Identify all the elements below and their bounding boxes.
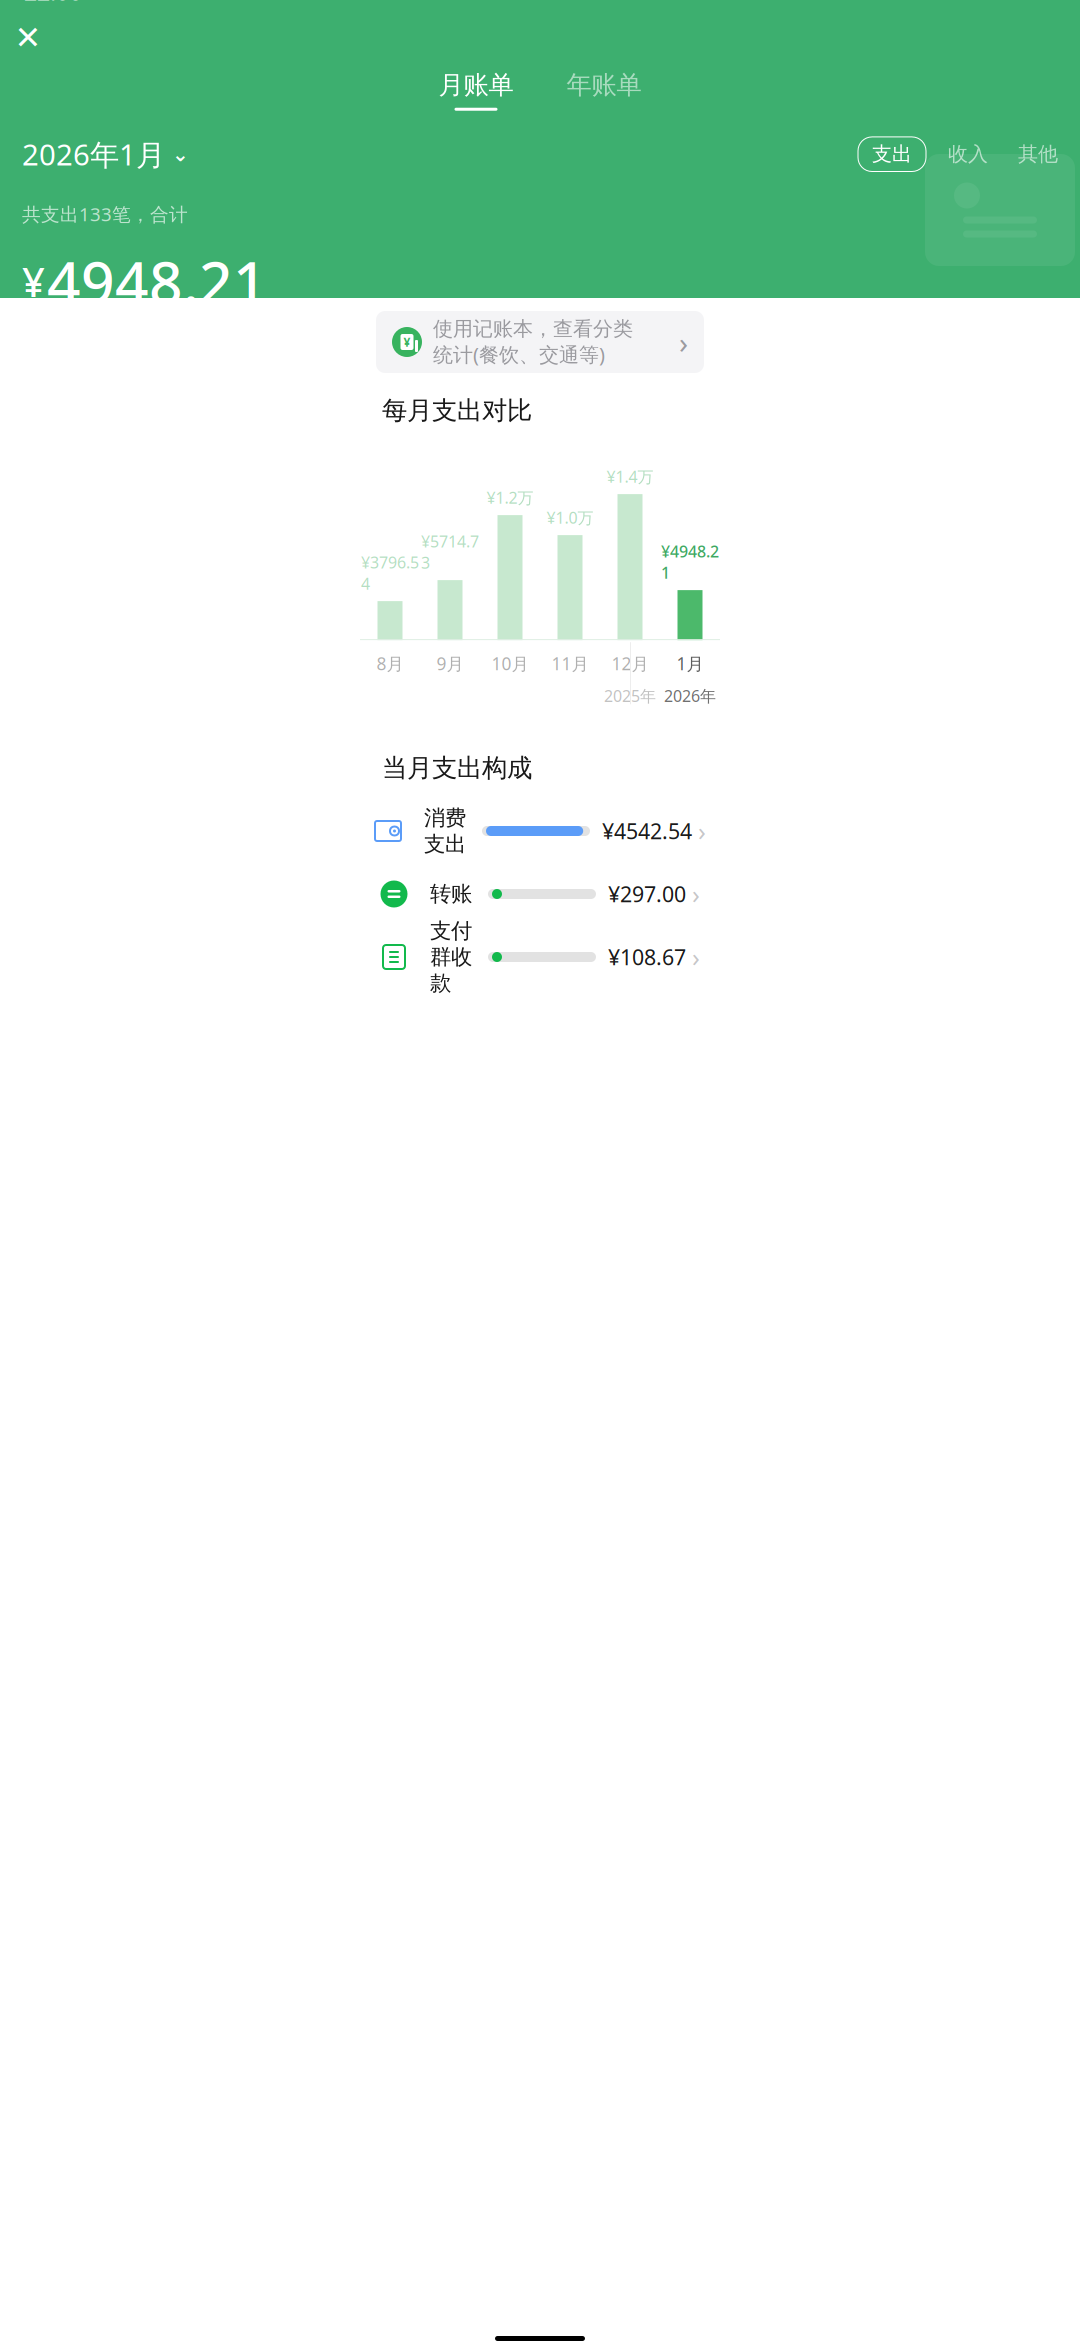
staticText: 消费支出 <box>424 805 466 857</box>
staticText: ¥4542.54 <box>602 817 692 845</box>
staticText: 10月 <box>491 652 528 675</box>
button[interactable]: 2026年1月 <box>22 135 189 174</box>
staticText: 共支出133笔，合计 <box>22 202 188 226</box>
staticText: › <box>698 814 706 848</box>
button[interactable]: ¥ <box>376 311 704 373</box>
staticText: 9月 <box>436 652 463 675</box>
staticText: 2026年 <box>664 685 716 706</box>
staticText: › <box>692 877 700 911</box>
staticText: 每月支出对比 <box>382 395 532 426</box>
button[interactable]: 支出 <box>858 137 926 171</box>
staticText: ¥3796.54 <box>361 552 419 594</box>
staticText: 收入 <box>948 142 988 166</box>
staticText: 22:00 <box>24 0 82 7</box>
staticText: ¥1.0万 <box>546 507 593 528</box>
staticText: 12月 <box>611 652 648 675</box>
staticText: 转账 <box>430 881 472 907</box>
staticText: ¥ <box>403 334 410 350</box>
staticText: 8月 <box>376 652 403 675</box>
staticText: 支出 <box>872 142 912 166</box>
staticText: 2026年1月 <box>22 135 165 174</box>
staticText: ¥1.4万 <box>606 466 653 487</box>
staticText: 月账单 <box>438 70 513 101</box>
staticText: ⌄ <box>172 143 189 166</box>
staticText: › <box>692 940 700 974</box>
button[interactable]: 其他 <box>1018 142 1058 166</box>
button[interactable]: 收入 <box>948 142 988 166</box>
staticText: ✕ <box>14 19 41 56</box>
staticText: ¥1.2万 <box>486 487 533 508</box>
staticText: 11月 <box>551 652 588 675</box>
staticText: 4948.21 <box>47 242 267 320</box>
button[interactable]: Close <box>8 18 48 58</box>
staticText: ¥ <box>22 255 45 308</box>
staticText: 支付群收款 <box>430 918 472 996</box>
staticText: 使用记账本，查看分类统计(餐饮、交通等) <box>433 316 633 367</box>
staticText: ¥4948.21 <box>661 541 719 583</box>
staticText: 1月 <box>676 652 703 675</box>
button[interactable]: 转账 <box>358 862 722 925</box>
staticText: ¥5714.73 <box>421 531 479 573</box>
staticText: ¥108.67 <box>608 943 686 971</box>
button[interactable]: 月账单 <box>426 70 526 111</box>
staticText: 当月支出构成 <box>382 752 532 783</box>
button[interactable]: 年账单 <box>554 70 654 111</box>
staticText: 2025年 <box>604 685 656 706</box>
staticText: › <box>679 322 688 361</box>
staticText: 其他 <box>1018 142 1058 166</box>
button[interactable]: 支付群收款 <box>358 925 722 988</box>
button[interactable]: 消费支出 <box>352 799 728 862</box>
staticText: ¥297.00 <box>608 880 686 908</box>
staticText: 年账单 <box>566 70 641 101</box>
